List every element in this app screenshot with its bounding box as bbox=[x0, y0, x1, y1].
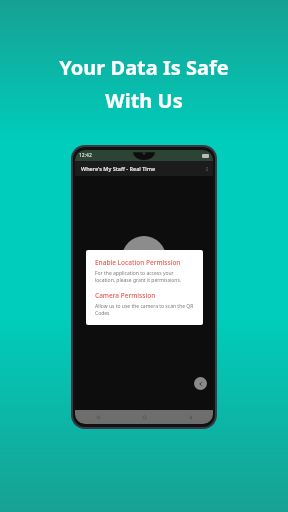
button[interactable]: More options bbox=[201, 163, 213, 175]
button[interactable]: Where's My Staff - Real Time bbox=[75, 161, 213, 176]
staticText: Allow us to use the camera to scan the Q… bbox=[95, 303, 194, 317]
button[interactable]: Back bbox=[194, 377, 207, 390]
button[interactable]: Recents bbox=[75, 415, 121, 420]
staticText: Camera Permission bbox=[95, 291, 156, 300]
staticText: With Us bbox=[105, 87, 183, 114]
button[interactable]: Back bbox=[167, 415, 213, 420]
staticText: Your Data Is Safe bbox=[59, 54, 229, 81]
staticText: 12:42 bbox=[79, 152, 92, 159]
button[interactable]: Enable Location Permission bbox=[86, 250, 203, 325]
staticText: Enable Location Permission bbox=[95, 258, 181, 267]
staticText: Where's My Staff - Real Time bbox=[81, 165, 156, 172]
staticText: For the application to access your locat… bbox=[95, 270, 194, 284]
